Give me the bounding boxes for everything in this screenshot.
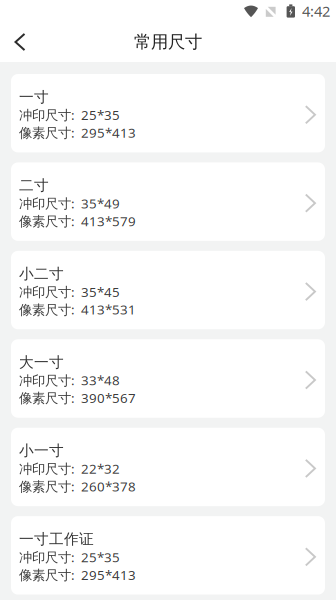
staticText: 4:42 (302, 1, 330, 21)
staticText: 冲印尺寸: 33*48 (19, 371, 120, 389)
staticText: 像素尺寸: 295*413 (19, 566, 136, 584)
staticText: 冲印尺寸: 25*35 (19, 106, 120, 124)
staticText: 冲印尺寸: 22*32 (19, 460, 120, 477)
staticText: 二寸 (19, 176, 49, 194)
staticText: 常用尺寸 (134, 31, 202, 53)
staticText: 冲印尺寸: 25*35 (19, 548, 120, 566)
staticText: 像素尺寸: 260*378 (19, 477, 136, 495)
button[interactable]: 小一寸 (11, 428, 325, 506)
staticText: 像素尺寸: 413*579 (19, 212, 136, 230)
staticText: 小二寸 (19, 265, 64, 283)
button[interactable]: 二寸 (11, 162, 325, 241)
button[interactable]: 一寸 (11, 74, 325, 152)
staticText: 一寸工作证 (19, 530, 94, 548)
staticText: 一寸 (19, 88, 49, 106)
button[interactable]: Back (0, 22, 40, 62)
staticText: 冲印尺寸: 35*45 (19, 283, 120, 301)
staticText: 冲印尺寸: 35*49 (19, 194, 120, 212)
staticText: 像素尺寸: 390*567 (19, 389, 136, 407)
button[interactable]: 一寸工作证 (11, 516, 325, 594)
button[interactable]: 大一寸 (11, 339, 325, 418)
staticText: 小一寸 (19, 442, 64, 460)
staticText: 像素尺寸: 295*413 (19, 124, 136, 141)
staticText: 大一寸 (19, 353, 64, 371)
staticText: 像素尺寸: 413*531 (19, 301, 136, 318)
button[interactable]: 小二寸 (11, 251, 325, 329)
